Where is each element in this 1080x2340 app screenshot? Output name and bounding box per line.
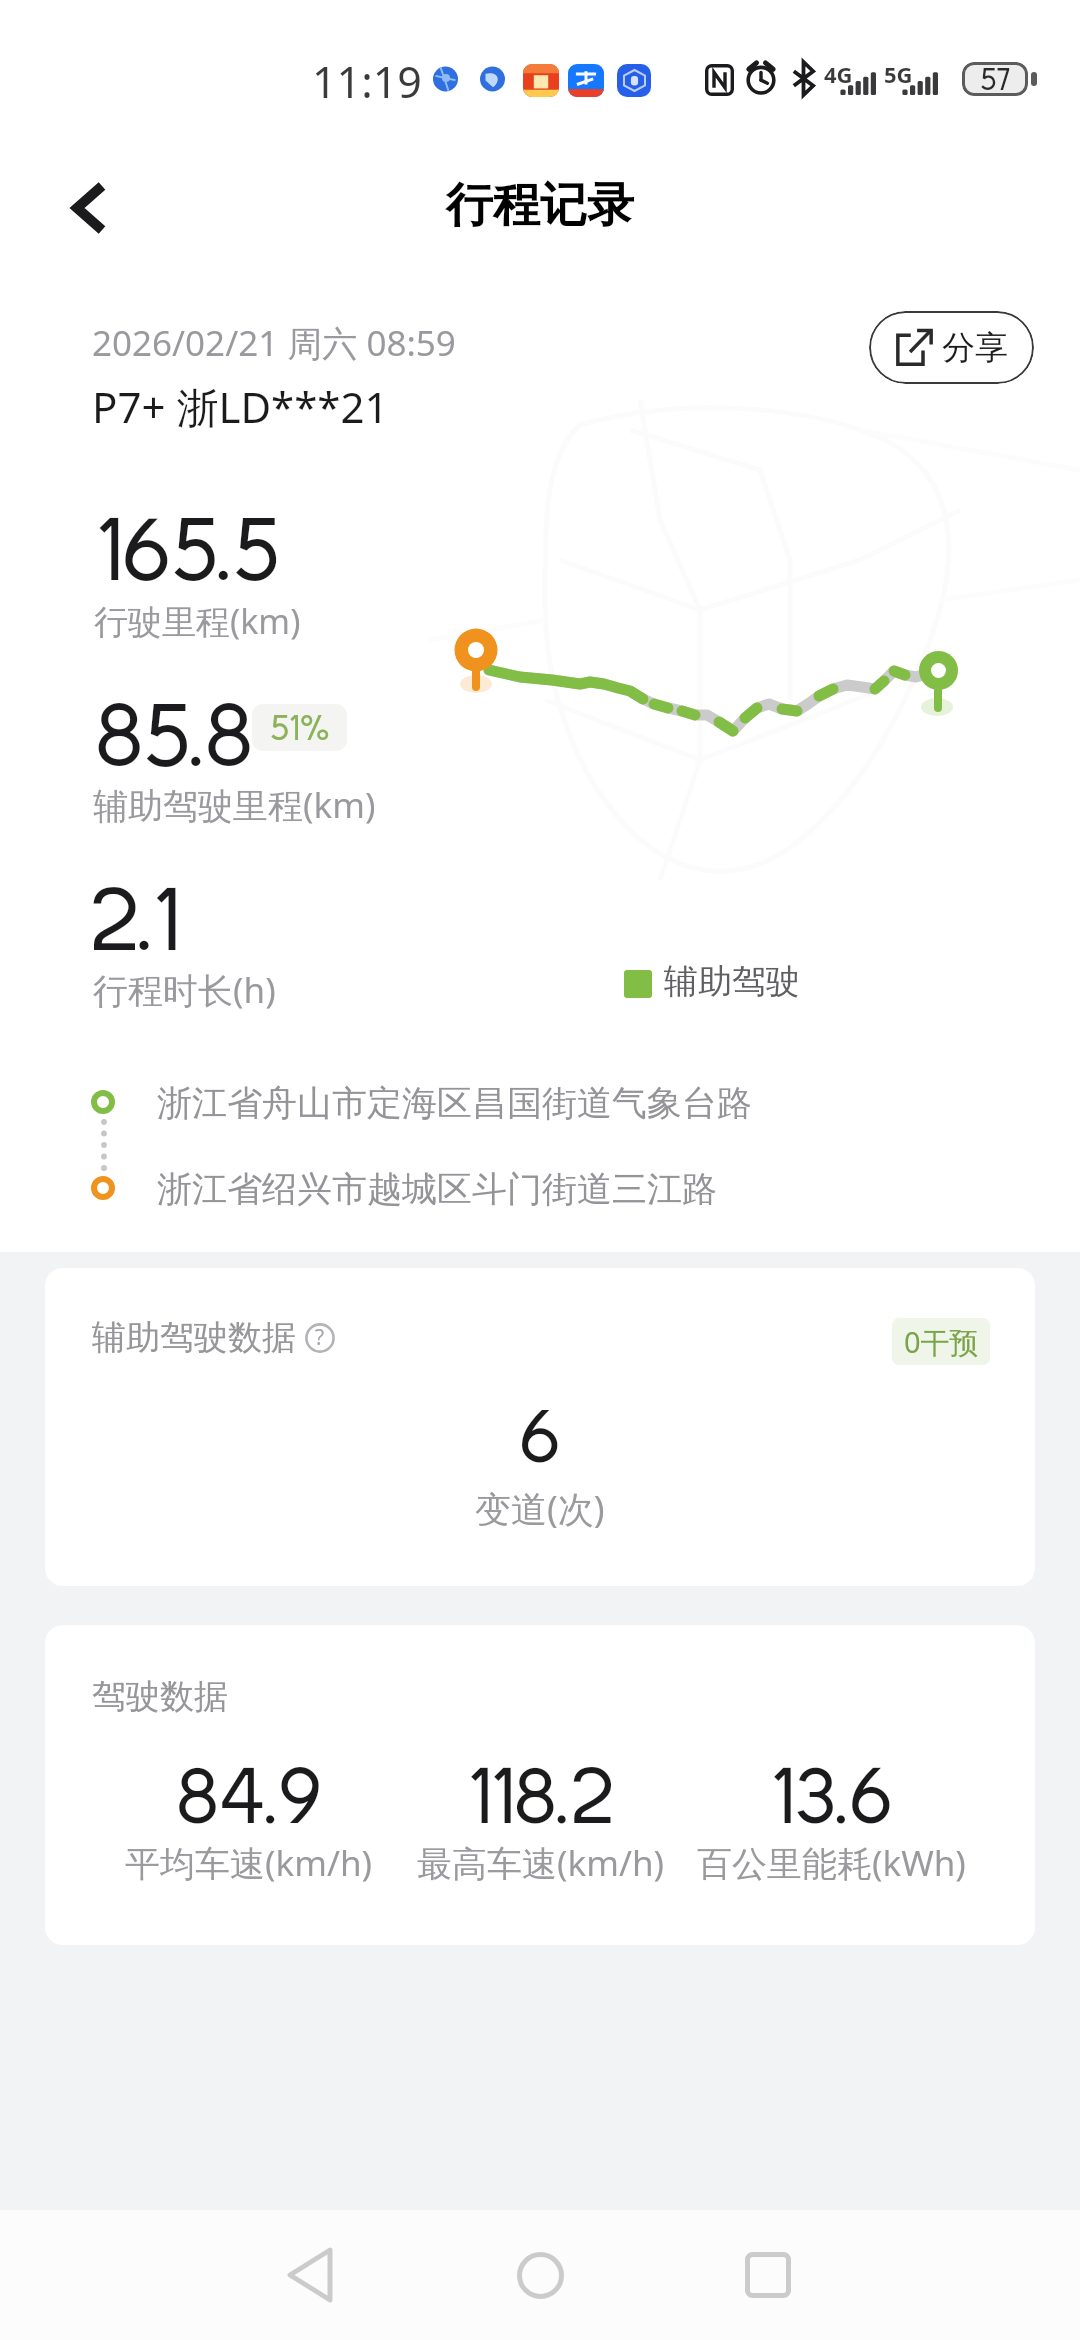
staticText: 浙江省舟山市定海区昌国街道气象台路 [157,1081,752,1125]
staticText: 165.5 [96,497,280,598]
staticText: 百公里能耗(kWh) [697,1839,966,1887]
button[interactable]: 分享 [869,311,1034,384]
button[interactable]: 驾驶数据 [45,1625,1035,1945]
staticText: 13.6 [771,1749,893,1839]
staticText: 变道(次) [475,1484,605,1533]
staticText: 辅助驾驶里程(km) [93,781,376,829]
staticText: 4G [824,59,853,89]
staticText: 6 [519,1392,561,1477]
staticText: 85.8 [95,683,254,784]
staticText: 行程记录 [446,176,634,235]
staticText: 浙江省绍兴市越城区斗门街道三江路 [157,1167,717,1211]
staticText: 51% [270,706,330,747]
button[interactable]: 辅助驾驶数据 [45,1268,1035,1586]
button[interactable]: Back [255,2220,365,2330]
staticText: 平均车速(km/h) [125,1839,373,1887]
staticText: 0干预 [904,1322,979,1362]
staticText: 辅助驾驶数据 [92,1316,296,1359]
staticText: 分享 [942,327,1008,369]
staticText: 5G [884,59,913,89]
staticText: 2.1 [89,867,179,968]
staticText: 2026/02/21 周六 08:59 [92,319,456,367]
staticText: 57 [980,62,1011,95]
staticText: 84.9 [176,1749,322,1839]
staticText: 行程时长(h) [93,966,276,1014]
staticText: 驾驶数据 [92,1675,228,1718]
staticText: 最高车速(km/h) [417,1839,665,1887]
staticText: ? [315,1323,325,1352]
button[interactable]: Home [485,2220,595,2330]
staticText: 辅助驾驶 [664,960,800,1003]
button[interactable]: Back [44,163,134,253]
button[interactable]: Recent apps [713,2220,823,2330]
staticText: 11:19 [312,52,422,111]
staticText: 118.2 [468,1749,614,1839]
staticText: 行驶里程(km) [94,598,301,644]
staticText: P7+ 浙LD***21 [92,378,389,435]
